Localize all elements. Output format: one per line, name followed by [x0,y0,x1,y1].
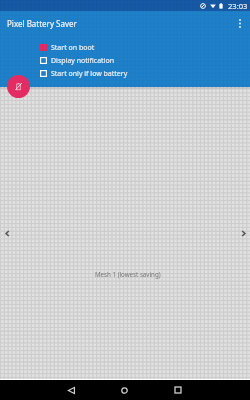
staticText: Mesh 1 (lowest saving) [95,270,161,278]
button[interactable]: Recent apps [168,380,188,400]
staticText: 23:03 [228,1,248,11]
button[interactable]: Display notification [0,54,250,67]
button[interactable]: Start only if low battery [0,67,250,80]
staticText: Pixel Battery Saver [7,18,77,29]
staticText: Start on boot [51,43,95,53]
button[interactable]: Next mesh [232,222,250,244]
button[interactable]: Previous mesh [0,222,18,244]
staticText: Display notification [51,56,114,66]
button[interactable]: Back [61,380,81,400]
button[interactable]: Home [114,380,134,400]
staticText: Start only if low battery [51,69,128,79]
button[interactable]: Start on boot [0,41,250,54]
button[interactable]: More options [229,12,250,34]
button[interactable]: Toggle battery saver [7,75,30,98]
